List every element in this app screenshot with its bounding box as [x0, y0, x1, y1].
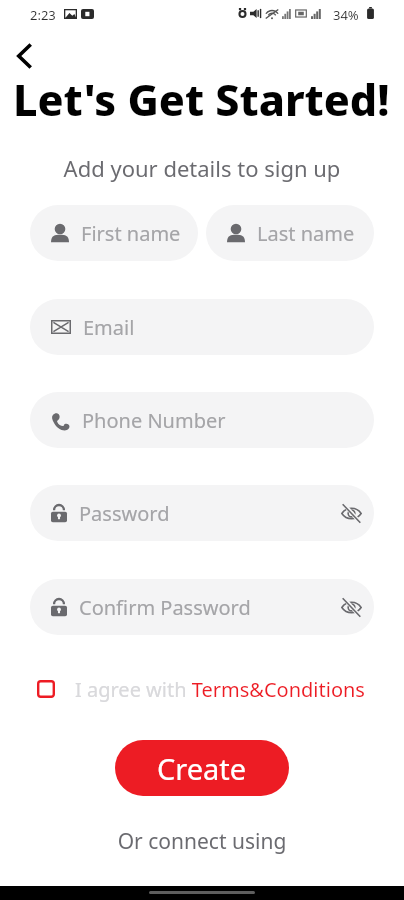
button[interactable]: Confirm Password: [30, 579, 374, 635]
staticText: Create: [157, 749, 247, 788]
button[interactable]: Create: [115, 740, 289, 796]
staticText: Let's Get Started!: [13, 70, 390, 129]
button[interactable]: Email: [30, 299, 374, 355]
staticText: Add your details to sign up: [0, 153, 404, 183]
staticText: Email: [83, 314, 135, 341]
staticText: First name: [81, 220, 181, 247]
staticText: I agree with Terms&Conditions: [75, 676, 365, 703]
button[interactable]: Back: [5, 36, 45, 76]
button[interactable]: Show password: [336, 498, 366, 528]
staticText: Password: [79, 500, 170, 527]
button[interactable]: Last name: [206, 205, 374, 261]
button[interactable]: Show password: [336, 592, 366, 622]
button[interactable]: First name: [30, 205, 198, 261]
staticText: 2:23: [30, 6, 56, 24]
staticText: Phone Number: [82, 407, 226, 434]
button[interactable]: Password: [30, 485, 374, 541]
button[interactable]: I agree with Terms&Conditions: [37, 672, 365, 706]
staticText: Or connect using: [0, 827, 404, 856]
staticText: Confirm Password: [79, 594, 251, 621]
staticText: 34%: [333, 6, 359, 24]
staticText: Last name: [257, 220, 355, 247]
button[interactable]: Phone Number: [30, 392, 374, 448]
